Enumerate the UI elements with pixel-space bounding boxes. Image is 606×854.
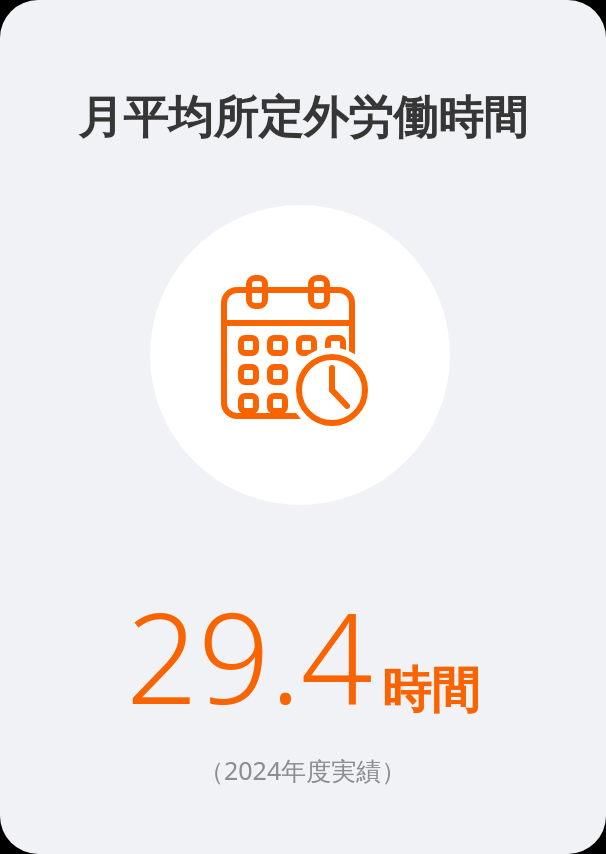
staticText: 時間 (382, 660, 480, 722)
other: Monthly overtime hours (221, 276, 379, 434)
staticText: 月平均所定外労働時間 (78, 90, 528, 147)
button[interactable]: 月平均所定外労働時間 (0, 0, 606, 854)
staticText: 29.4 (126, 569, 373, 741)
staticText: （2024年度実績） (199, 753, 407, 787)
